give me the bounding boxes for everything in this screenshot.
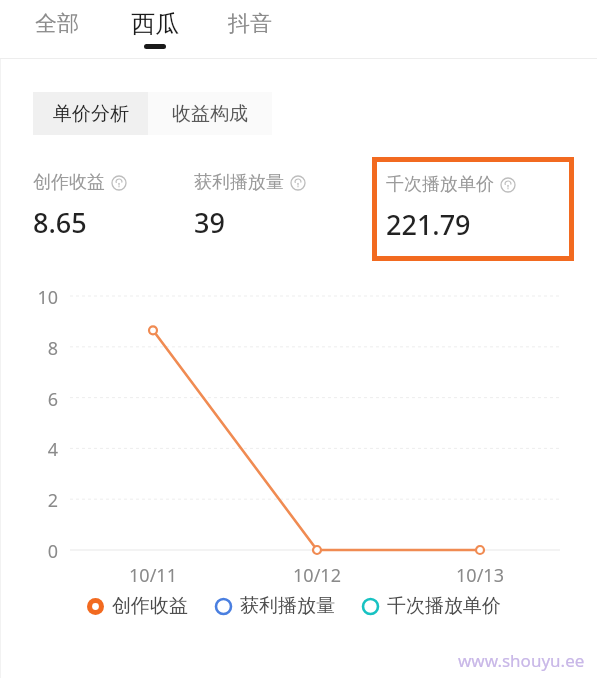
staticText: 10/12: [282, 563, 352, 588]
button[interactable]: 千次播放单价: [372, 157, 574, 261]
button[interactable]: 全部: [33, 10, 81, 48]
staticText: 收益构成: [172, 102, 248, 126]
staticText: 6: [20, 387, 58, 412]
staticText: 西瓜: [131, 9, 179, 39]
button[interactable]: 西瓜: [129, 9, 181, 49]
button[interactable]: 获利播放量: [214, 594, 335, 618]
staticText: 4: [20, 437, 58, 462]
button[interactable]: 千次播放单价: [361, 594, 501, 618]
staticText: 10/11: [118, 563, 188, 588]
staticText: 8: [20, 336, 58, 361]
staticText: 2: [20, 488, 58, 513]
staticText: 抖音: [228, 10, 272, 38]
staticText: 0: [20, 539, 58, 564]
button[interactable]: 创作收益: [86, 594, 188, 618]
staticText: 全部: [35, 10, 79, 38]
staticText: 39: [194, 204, 225, 241]
button[interactable]: 收益构成: [148, 92, 272, 135]
staticText: 221.79: [386, 206, 471, 243]
staticText: 10/13: [445, 563, 515, 588]
staticText: 获利播放量: [194, 171, 284, 194]
button[interactable]: 单价分析: [33, 92, 148, 135]
staticText: 创作收益: [112, 594, 188, 618]
staticText: 千次播放单价: [387, 594, 501, 618]
button[interactable]: 获利播放量: [194, 171, 364, 241]
staticText: 8.65: [33, 204, 87, 241]
staticText: 千次播放单价: [386, 173, 494, 196]
staticText: www.shouyu.ee: [458, 649, 585, 672]
staticText: 单价分析: [53, 102, 129, 126]
staticText: 创作收益: [33, 171, 105, 194]
button[interactable]: 创作收益: [33, 171, 203, 241]
staticText: 获利播放量: [240, 594, 335, 618]
staticText: 10: [20, 285, 58, 310]
button[interactable]: 抖音: [226, 10, 274, 48]
